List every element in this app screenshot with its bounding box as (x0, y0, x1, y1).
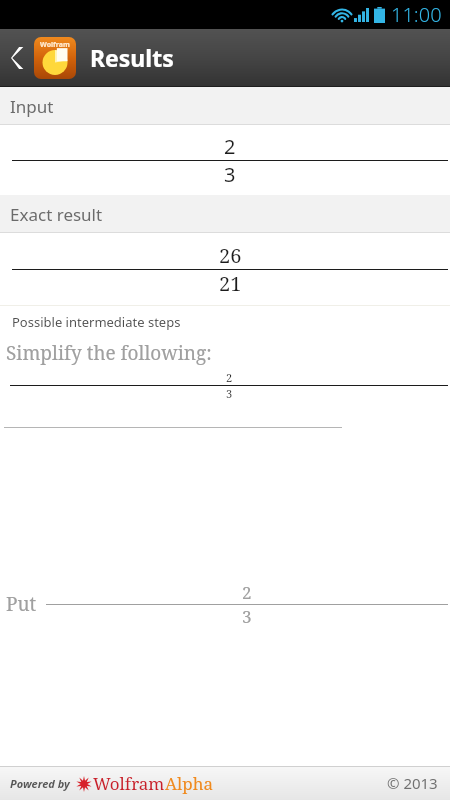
button[interactable]: Exact result (0, 195, 450, 233)
staticText: 3 (226, 386, 233, 401)
staticText: Results (90, 42, 174, 73)
staticText: 3 (242, 605, 252, 628)
staticText: Exact result (10, 203, 103, 226)
staticText: 11:00 (391, 1, 442, 28)
button[interactable]: 26 (0, 233, 450, 305)
staticText: 26 (219, 242, 242, 269)
staticText: Possible intermediate steps (12, 313, 181, 331)
button[interactable]: Back (0, 29, 450, 86)
staticText: Wolfram (93, 772, 165, 795)
staticText: Powered by (10, 776, 70, 791)
staticText: Alpha (165, 772, 214, 795)
staticText: 2 (242, 581, 252, 604)
staticText: 3 (224, 161, 236, 188)
staticText: Simplify the following: (6, 340, 212, 366)
staticText: 2 (224, 133, 236, 160)
other: Back (4, 38, 30, 78)
staticText: 21 (219, 270, 242, 297)
staticText: © 2013 (387, 773, 438, 793)
staticText: 2 (226, 370, 233, 385)
button[interactable]: Possible intermediate steps (0, 306, 450, 338)
staticText: Input (10, 95, 54, 118)
staticText: Wolfram (40, 40, 70, 50)
staticText: Put (6, 591, 37, 617)
button[interactable]: Input (0, 87, 450, 125)
button[interactable]: 2 (0, 125, 450, 195)
